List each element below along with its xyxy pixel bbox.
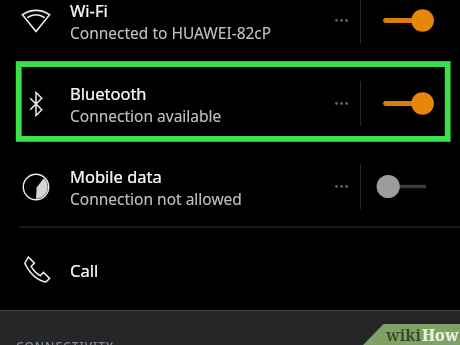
staticText: Connection available xyxy=(70,105,222,126)
button[interactable]: Bluetooth xyxy=(0,62,460,145)
button[interactable]: More options for Bluetooth xyxy=(325,62,358,145)
staticText: Connected to HUAWEI-82cP xyxy=(70,22,272,43)
button[interactable]: More options for Mobile data xyxy=(325,145,358,228)
button[interactable]: Wi-Fi xyxy=(0,0,460,62)
button[interactable]: Toggle Mobile data xyxy=(372,145,452,228)
staticText: CONNECTIVITY xyxy=(16,338,115,345)
button[interactable]: Toggle Wi-Fi xyxy=(372,0,452,62)
staticText: Call xyxy=(70,259,99,281)
button[interactable]: Mobile data xyxy=(0,145,460,228)
staticText: Mobile data xyxy=(70,165,162,187)
button[interactable]: More options for Wi-Fi xyxy=(325,0,358,62)
staticText: Bluetooth xyxy=(70,82,147,104)
staticText: How xyxy=(422,324,459,345)
staticText: wiki xyxy=(386,324,422,345)
button[interactable]: Call xyxy=(0,228,460,311)
button[interactable]: Toggle Bluetooth xyxy=(372,62,452,145)
staticText: Connection not allowed xyxy=(70,188,242,209)
staticText: Wi-Fi xyxy=(70,0,108,21)
